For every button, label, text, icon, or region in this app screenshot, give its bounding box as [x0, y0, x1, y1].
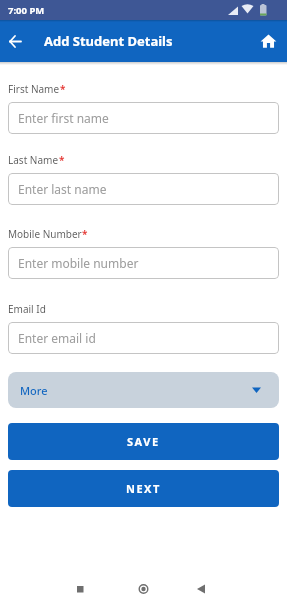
- button[interactable]: More: [8, 372, 279, 408]
- staticText: Enter mobile number: [18, 255, 139, 271]
- button[interactable]: Enter email id: [8, 322, 279, 354]
- button[interactable]: SAVE: [8, 423, 279, 460]
- staticText: Last Name: [8, 153, 59, 167]
- staticText: Email Id: [8, 302, 46, 316]
- staticText: Enter first name: [18, 110, 109, 126]
- button[interactable]: Enter mobile number: [8, 247, 279, 279]
- staticText: *: [82, 227, 88, 241]
- staticText: Add Student Details: [44, 32, 173, 50]
- button[interactable]: NEXT: [8, 470, 279, 507]
- staticText: *: [60, 82, 66, 96]
- staticText: First Name: [8, 82, 60, 96]
- staticText: Mobile Number: [8, 227, 82, 241]
- staticText: Enter last name: [18, 181, 107, 197]
- staticText: NEXT: [126, 481, 161, 496]
- button[interactable]: Enter first name: [8, 102, 279, 134]
- button[interactable]: Enter last name: [8, 173, 279, 205]
- button[interactable]: [249, 20, 287, 62]
- staticText: Enter email id: [18, 330, 96, 346]
- staticText: More: [20, 383, 48, 398]
- staticText: 7:00 PM: [8, 4, 45, 17]
- button[interactable]: [0, 20, 30, 62]
- staticText: SAVE: [127, 434, 160, 449]
- staticText: *: [59, 153, 65, 167]
